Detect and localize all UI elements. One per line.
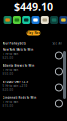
button[interactable]: Cincinnati Reds To Win bbox=[0, 96, 67, 112]
staticText: Cincinnati Reds To Win bbox=[3, 96, 37, 99]
staticText: $25.00 bbox=[3, 56, 14, 60]
button[interactable]: See All bbox=[52, 42, 62, 45]
staticText: $15.00 bbox=[3, 104, 14, 108]
staticText: $50.00 bbox=[3, 72, 14, 76]
button[interactable]: Sportsbook bbox=[13, 16, 21, 24]
staticText: Play Now bbox=[26, 31, 40, 35]
button[interactable]: New York Mets To Win bbox=[0, 48, 67, 64]
button[interactable]: News bbox=[41, 16, 49, 24]
staticText: Your Parlay Bets bbox=[3, 42, 26, 45]
staticText: Atlanta Braves To Win bbox=[3, 64, 35, 67]
button[interactable]: Teams bbox=[31, 16, 39, 24]
staticText: $20.00 bbox=[3, 88, 14, 92]
button[interactable]: Atlanta Braves To Win bbox=[0, 64, 67, 80]
button[interactable]: Casino bbox=[4, 16, 12, 24]
staticText: ATL/LAD Over 12.5 bbox=[3, 80, 29, 83]
button[interactable]: Live bbox=[50, 16, 58, 24]
staticText: 5 Hr to win +210 bbox=[3, 84, 28, 88]
staticText: 1 Hr to Win bbox=[3, 68, 19, 72]
button[interactable]: Play Now bbox=[26, 30, 40, 35]
staticText: New York Mets To Win bbox=[3, 48, 34, 51]
button[interactable]: ATL/LAD Over 12.5 bbox=[0, 80, 67, 96]
staticText: $449.10 bbox=[14, 0, 53, 14]
button[interactable]: DFS bbox=[22, 16, 30, 24]
staticText: See All bbox=[52, 42, 62, 45]
staticText: 1 Hr to Win bbox=[3, 52, 19, 56]
button[interactable]: Rewards bbox=[59, 16, 67, 24]
staticText: 1 Hr to Win bbox=[3, 100, 19, 104]
